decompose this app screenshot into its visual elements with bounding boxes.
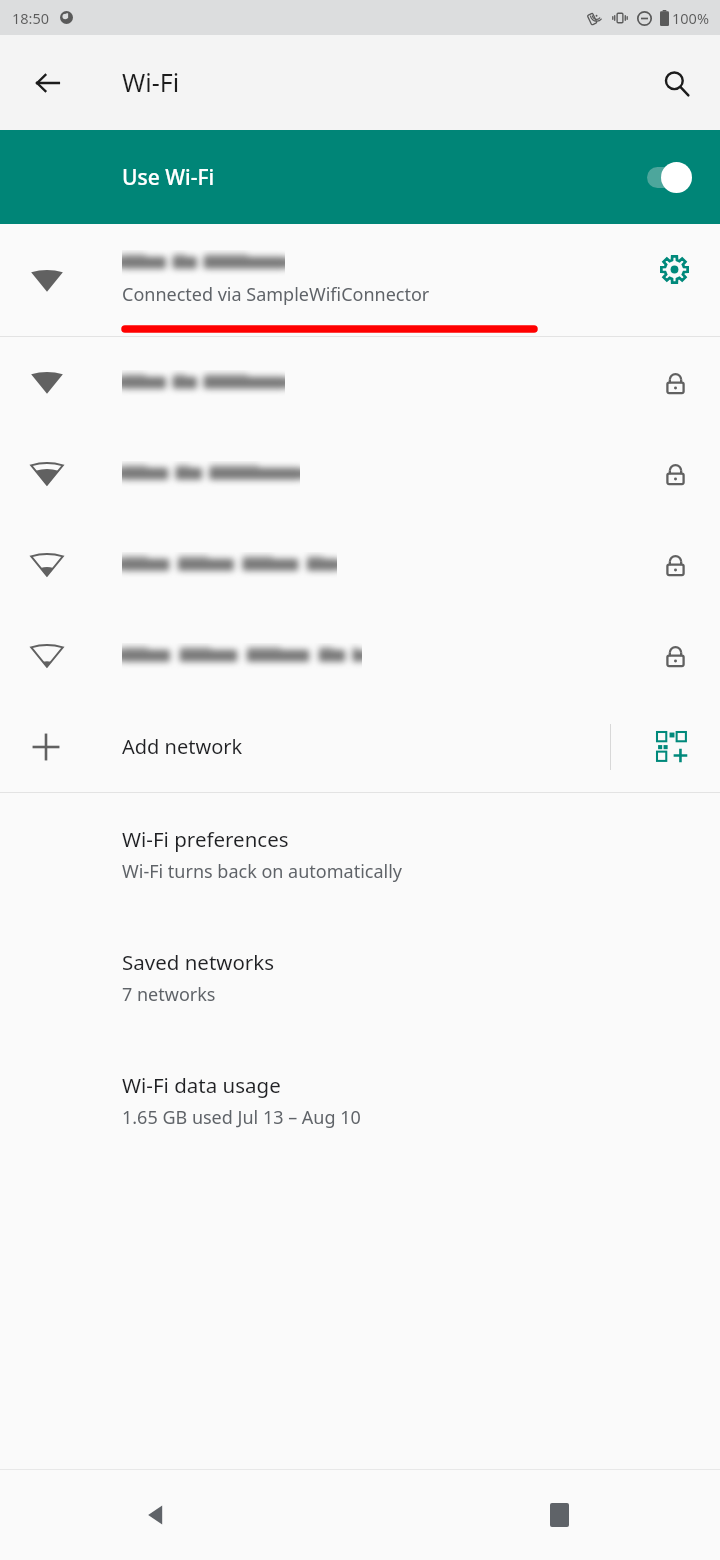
staticText: 18:50	[12, 8, 50, 28]
staticText: Wi-Fi turns back on automatically	[122, 859, 403, 884]
staticText: Wi-Fi data usage	[122, 1071, 281, 1099]
button[interactable]: Scan QR code	[646, 721, 698, 773]
button[interactable]: Back	[128, 1486, 186, 1544]
button[interactable]: Search	[648, 55, 704, 111]
staticText: 7 networks	[122, 982, 216, 1007]
button[interactable]: Wi-Fi data usage	[0, 1039, 720, 1162]
button[interactable]	[0, 519, 720, 610]
staticText: Use Wi-Fi	[122, 163, 215, 192]
staticText: Wi-Fi	[122, 65, 180, 99]
staticText: Connected via SampleWifiConnector	[122, 282, 430, 307]
button[interactable]: Wi-Fi preferences	[0, 793, 720, 916]
staticText: 100%	[672, 8, 709, 28]
button[interactable]: Network settings	[648, 243, 700, 295]
staticText: Saved networks	[122, 948, 275, 976]
button[interactable]: Use Wi-Fi	[0, 130, 720, 224]
button[interactable]	[0, 428, 720, 519]
staticText: Wi-Fi preferences	[122, 825, 289, 853]
staticText: Add network	[122, 733, 243, 760]
button[interactable]	[0, 337, 720, 428]
staticText: 1.65 GB used Jul 13 – Aug 10	[122, 1105, 361, 1130]
button[interactable]: Add network	[0, 701, 720, 792]
button[interactable]	[0, 610, 720, 701]
button[interactable]: Connected via SampleWifiConnector	[0, 224, 720, 336]
button[interactable]: Navigate up	[20, 55, 76, 111]
button[interactable]: Recent apps	[530, 1486, 588, 1544]
button[interactable]: Saved networks	[0, 916, 720, 1039]
